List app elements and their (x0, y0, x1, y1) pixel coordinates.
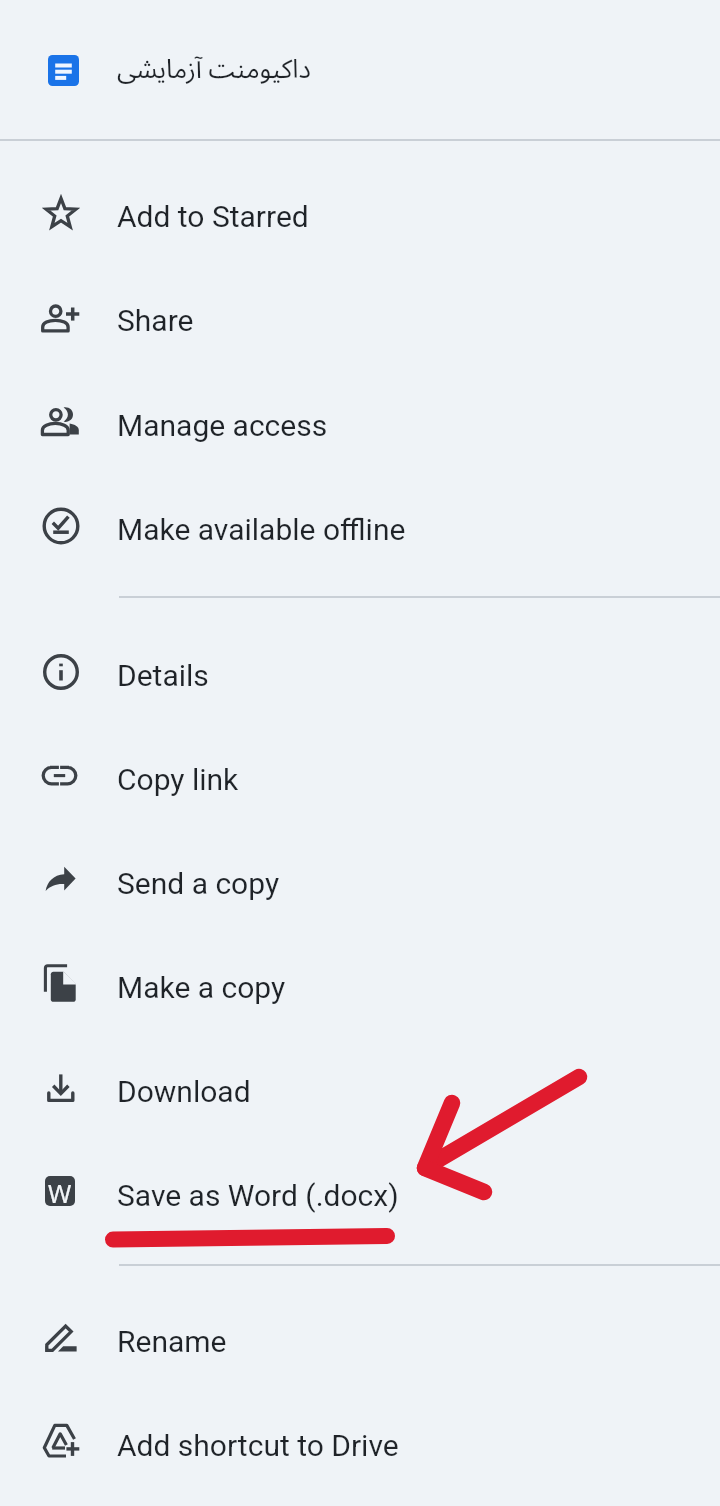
staticText: Manage access (117, 408, 328, 443)
staticText: Share (117, 303, 194, 338)
staticText: Add shortcut to Drive (117, 1428, 399, 1463)
staticText: Details (117, 658, 209, 693)
button[interactable]: Make available offline (0, 477, 720, 581)
staticText: Rename (117, 1324, 227, 1359)
button[interactable]: Save as Word (0, 1143, 720, 1247)
staticText: W (48, 1176, 72, 1206)
button[interactable]: Rename (0, 1289, 720, 1393)
button[interactable]: Copy link (0, 727, 720, 831)
button[interactable]: Share (0, 268, 720, 372)
button[interactable]: Details (0, 623, 720, 727)
staticText: Make a copy (117, 970, 286, 1005)
staticText: Add to Starred (117, 199, 309, 234)
staticText: Copy link (117, 762, 239, 797)
button[interactable]: Add shortcut to Drive (0, 1393, 720, 1497)
staticText: Make available offline (117, 512, 406, 547)
button[interactable]: Manage access (0, 373, 720, 477)
button[interactable]: Send a copy (0, 831, 720, 935)
staticText: داکیومنت آزمایشی (117, 42, 311, 97)
button[interactable]: Add to Starred (0, 164, 720, 268)
staticText: Save as Word (.docx) (117, 1178, 399, 1213)
button[interactable]: Open document داکیومنت آزمایشی (0, 0, 720, 139)
staticText: Send a copy (117, 866, 280, 901)
staticText: Download (117, 1074, 251, 1109)
button[interactable]: Make a copy (0, 935, 720, 1039)
button[interactable]: Download (0, 1039, 720, 1143)
